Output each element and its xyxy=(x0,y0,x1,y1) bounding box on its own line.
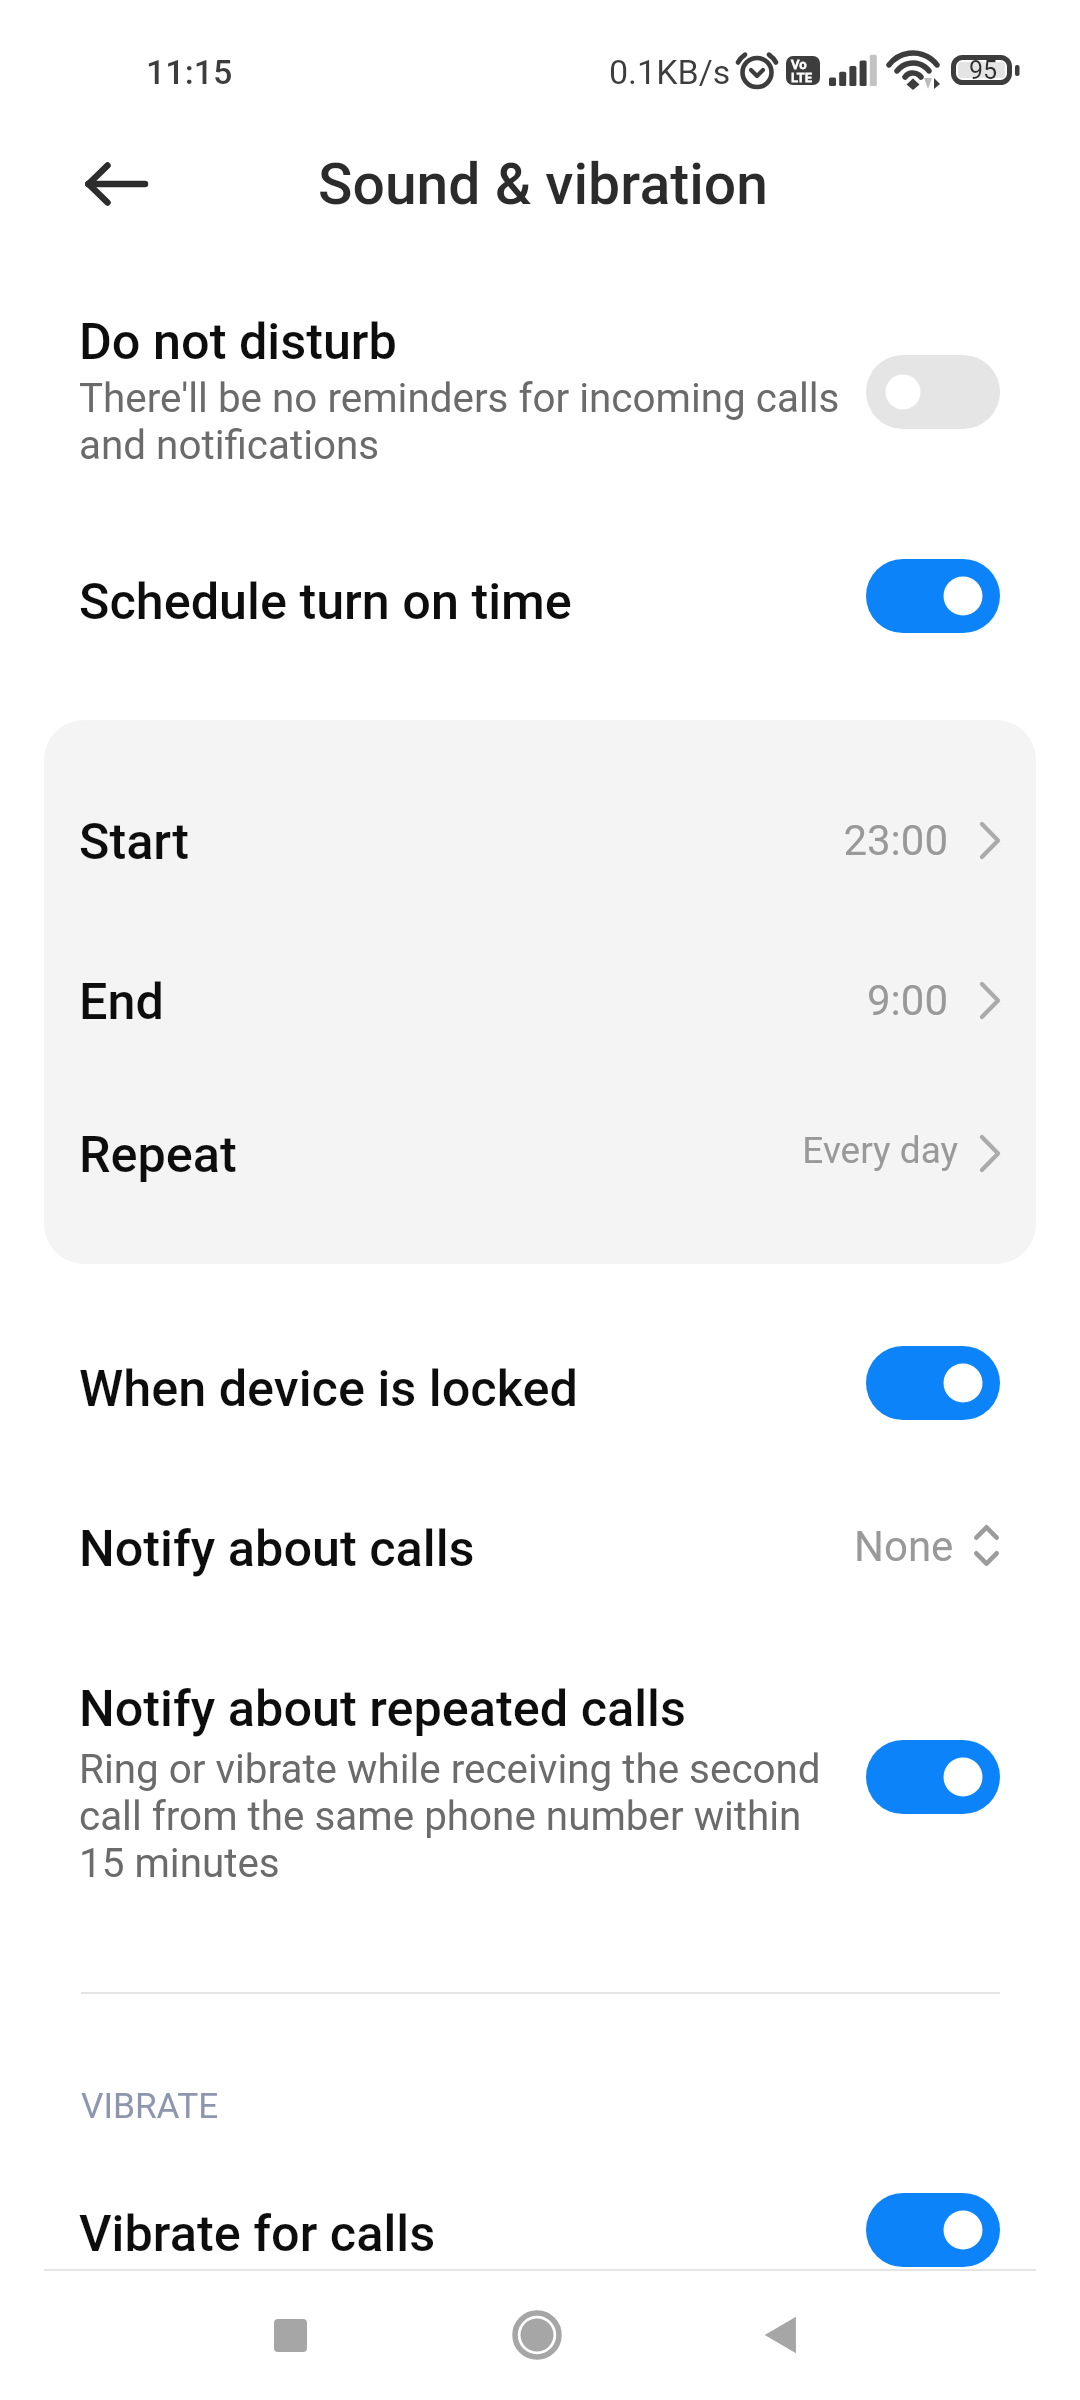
staticText: 95 xyxy=(969,56,998,85)
staticText: Every day xyxy=(44,1129,958,1172)
button[interactable]: Switch on xyxy=(866,559,1000,633)
staticText: 11:15 xyxy=(146,52,233,92)
staticText: Repeat xyxy=(79,1125,237,1184)
staticText: Vo xyxy=(791,57,807,72)
button[interactable]: Switch on xyxy=(866,1346,1000,1420)
staticText: There'll be no reminders for incoming ca… xyxy=(79,375,849,469)
button[interactable]: Switch on xyxy=(866,2193,1000,2267)
staticText: Do not disturb xyxy=(79,312,397,371)
staticText: When device is locked xyxy=(79,1359,578,1418)
button[interactable]: End xyxy=(44,972,1036,1082)
staticText: 9:00 xyxy=(44,976,948,1025)
staticText: Ring or vibrate while receiving the seco… xyxy=(79,1746,834,1887)
staticText: Schedule turn on time xyxy=(79,572,572,631)
button[interactable]: Vibrate for calls xyxy=(0,2204,1080,2314)
button[interactable]: Notify about repeated calls xyxy=(0,1679,1080,1909)
button[interactable]: Recent apps xyxy=(245,2290,335,2380)
staticText: Notify about calls xyxy=(79,1519,475,1578)
staticText: Start xyxy=(79,812,190,871)
button[interactable]: Home xyxy=(492,2290,582,2380)
staticText: 0.1KB/s xyxy=(609,52,731,92)
staticText: Vibrate for calls xyxy=(79,2204,436,2263)
button[interactable]: When device is locked xyxy=(0,1359,1080,1469)
staticText: LTE xyxy=(791,70,812,85)
button[interactable]: Start xyxy=(44,812,1036,922)
staticText: End xyxy=(79,972,164,1031)
staticText: 23:00 xyxy=(44,816,948,865)
staticText: Sound & vibration xyxy=(318,151,768,218)
staticText: Notify about repeated calls xyxy=(79,1679,686,1738)
button[interactable]: Back xyxy=(738,2290,828,2380)
button[interactable]: Do not disturb xyxy=(0,312,1080,492)
button[interactable]: Repeat xyxy=(44,1125,1036,1235)
button[interactable]: Navigate up xyxy=(62,130,162,230)
button[interactable]: Switch on xyxy=(866,1740,1000,1814)
button[interactable]: Schedule turn on time xyxy=(0,572,1080,682)
button[interactable]: Switch off xyxy=(866,355,1000,429)
staticText: VIBRATE xyxy=(81,2085,219,2126)
staticText: None xyxy=(854,1522,954,1571)
button[interactable]: Notify about calls xyxy=(0,1519,1080,1629)
